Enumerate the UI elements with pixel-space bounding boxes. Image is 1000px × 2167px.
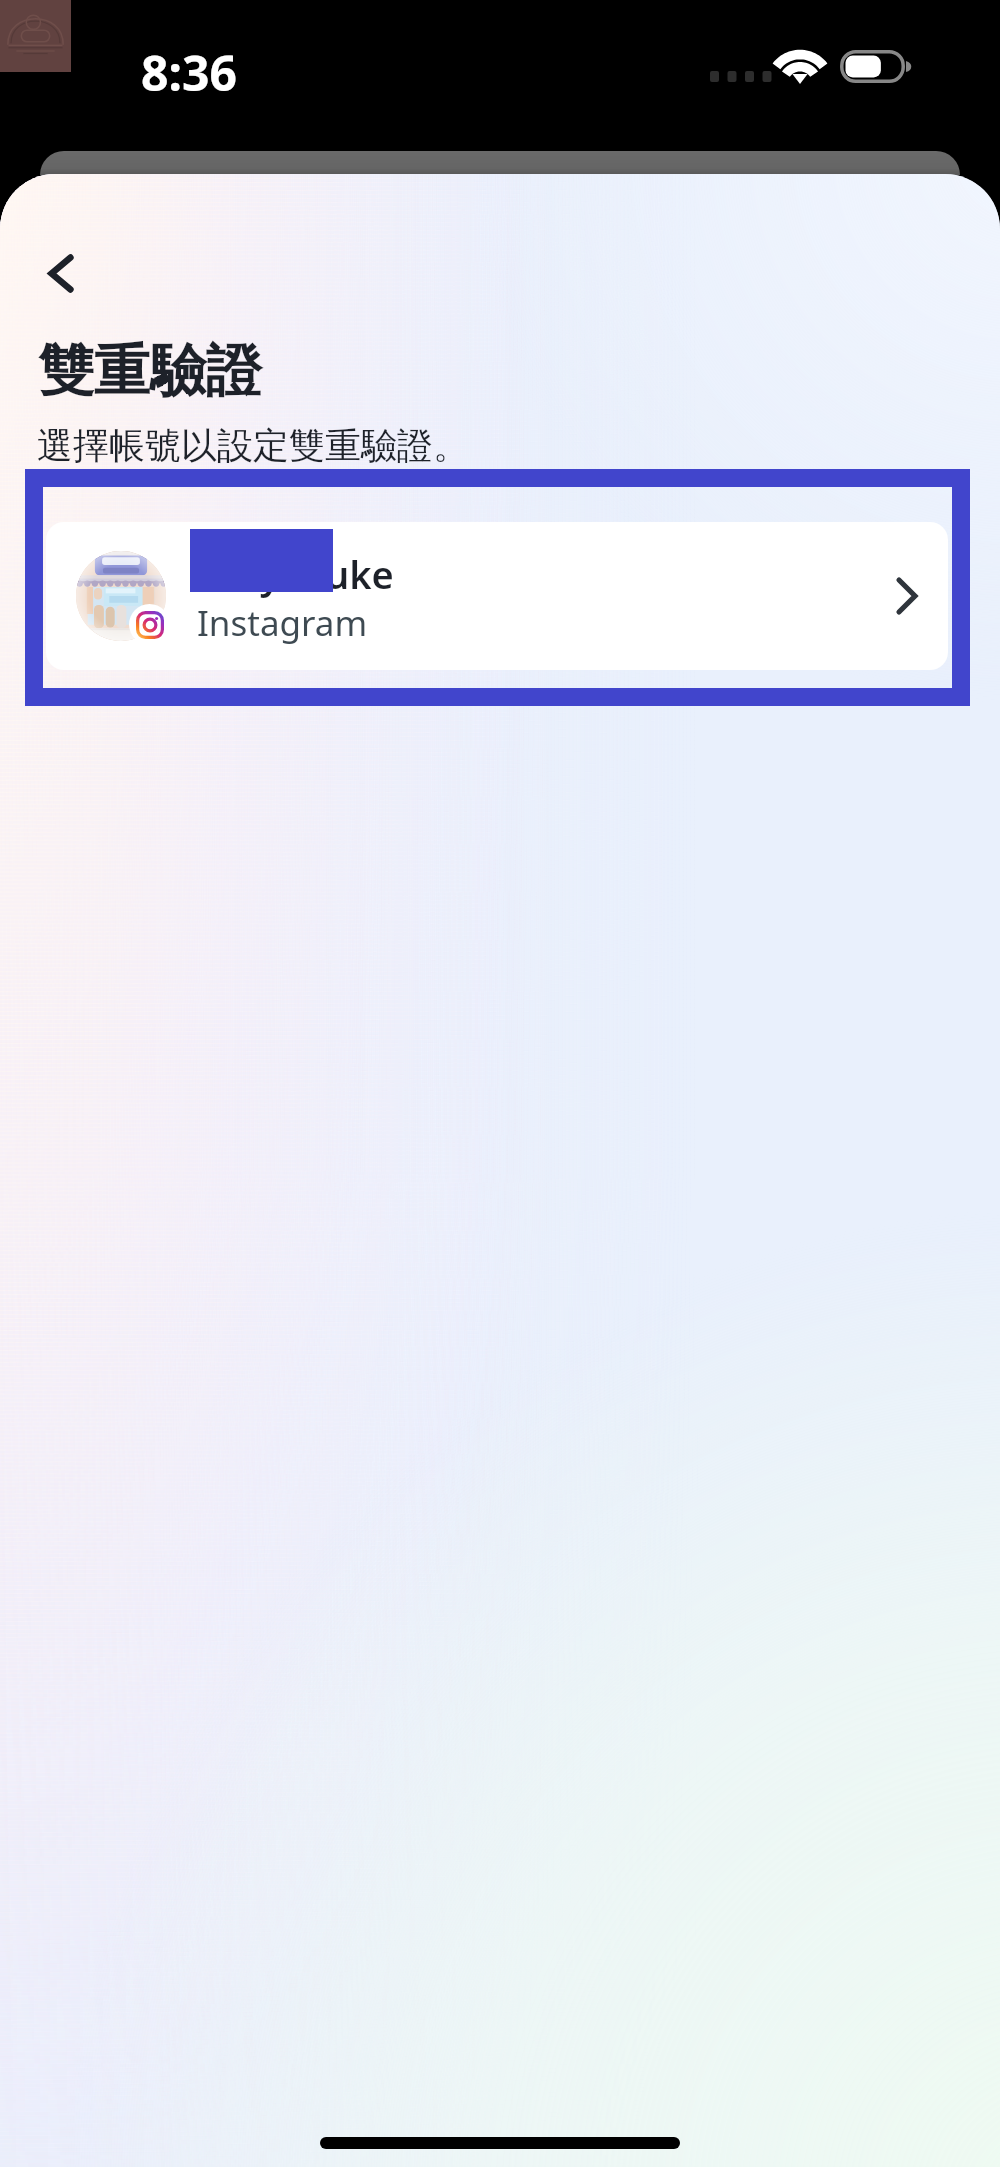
staticText: 雙重驗證 <box>38 336 262 407</box>
button[interactable]: Back <box>27 239 95 307</box>
staticText: 選擇帳號以設定雙重驗證。 <box>37 423 469 468</box>
button[interactable]: aaayaauke <box>25 469 970 706</box>
staticText: aaayaauke <box>193 548 394 600</box>
staticText: Instagram <box>197 599 368 647</box>
staticText: 8:36 <box>141 40 237 105</box>
